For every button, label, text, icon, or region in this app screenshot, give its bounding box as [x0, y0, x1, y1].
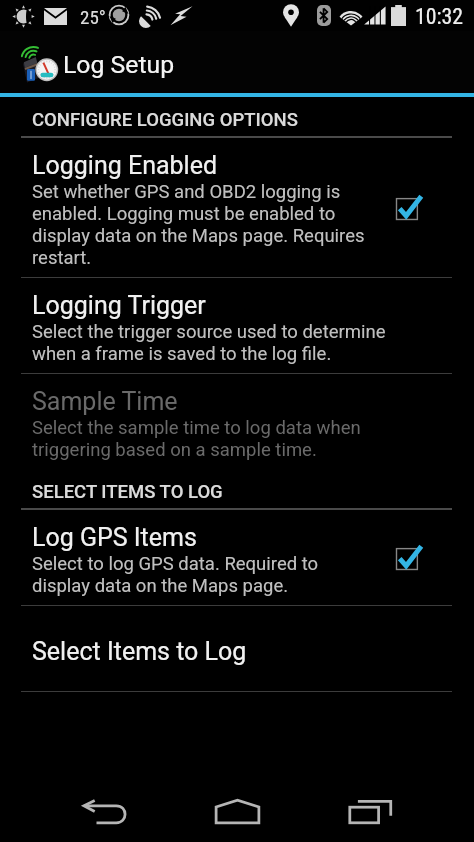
button[interactable]: Toggle	[378, 529, 436, 587]
button[interactable]: Select Items to Log	[0, 606, 474, 691]
staticText: Select the trigger source used to determ…	[32, 321, 410, 365]
staticText: 25°	[80, 6, 106, 28]
button[interactable]: Log GPS Items	[0, 510, 474, 605]
staticText: Log GPS Items	[32, 523, 197, 552]
button[interactable]: Toggle	[378, 179, 436, 237]
staticText: Logging Trigger	[32, 291, 206, 320]
staticText: Sample Time	[32, 387, 178, 416]
staticText: 10:32	[415, 4, 464, 30]
staticText: Select Items to Log	[32, 637, 247, 666]
staticText: Select to log GPS data. Required to disp…	[32, 553, 378, 597]
button[interactable]: Logging Enabled	[0, 138, 474, 277]
staticText: Select the sample time to log data when …	[32, 417, 410, 461]
staticText: Log Setup	[63, 50, 175, 79]
staticText: Logging Enabled	[32, 151, 218, 180]
staticText: SELECT ITEMS TO LOG	[32, 481, 223, 503]
staticText: Set whether GPS and OBD2 logging is enab…	[32, 181, 378, 269]
button[interactable]: Sample Time	[0, 374, 474, 469]
button[interactable]: Logging Trigger	[0, 278, 474, 373]
button[interactable]: Back	[69, 779, 141, 842]
button[interactable]: Home	[201, 778, 273, 842]
staticText: CONFIGURE LOGGING OPTIONS	[32, 109, 298, 131]
button[interactable]: Recents	[334, 779, 406, 842]
